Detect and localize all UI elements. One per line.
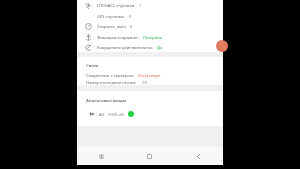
staticText: Координаты действительны: — [97, 45, 153, 50]
staticText: 7000 мВ — [108, 112, 124, 117]
staticText: 1 — [139, 3, 142, 8]
button[interactable]: Фиксация координат: — [77, 32, 223, 42]
staticText: 0 — [130, 24, 133, 29]
staticText: Потеряна — [143, 35, 162, 40]
staticText: Номер последней сессии: — [86, 80, 137, 85]
staticText: GPS спутники: — [97, 14, 125, 19]
staticText: Соединение с сервером: — [86, 73, 134, 78]
button[interactable]: Back — [174, 147, 223, 165]
staticText: Скорость, км/ч — [97, 24, 126, 29]
staticText: Аналоговые входы — [86, 97, 127, 103]
staticText: ГЛОНАСС спутники — [97, 3, 135, 8]
button[interactable]: Координаты действительны: — [77, 42, 223, 52]
button[interactable]: ГЛОНАСС спутники — [77, 0, 223, 11]
staticText: Да — [157, 45, 163, 50]
button[interactable]: Recent apps — [77, 147, 125, 165]
button[interactable]: A0 — [86, 111, 217, 117]
staticText: 0 — [129, 14, 132, 19]
staticText: Связь — [86, 62, 99, 68]
staticText: Фиксация координат: — [97, 35, 139, 40]
staticText: Отсутствует — [138, 73, 161, 78]
button[interactable]: Скорость, км/ч — [77, 21, 223, 32]
button[interactable]: Home — [125, 147, 174, 165]
button[interactable]: Соединение с сервером: — [86, 73, 217, 78]
staticText: -10 — [141, 80, 147, 85]
staticText: A0 — [99, 112, 104, 117]
button[interactable]: GPS спутники: — [77, 11, 223, 21]
button[interactable]: Номер последней сессии: — [86, 80, 217, 85]
button[interactable]: Add — [216, 40, 228, 52]
